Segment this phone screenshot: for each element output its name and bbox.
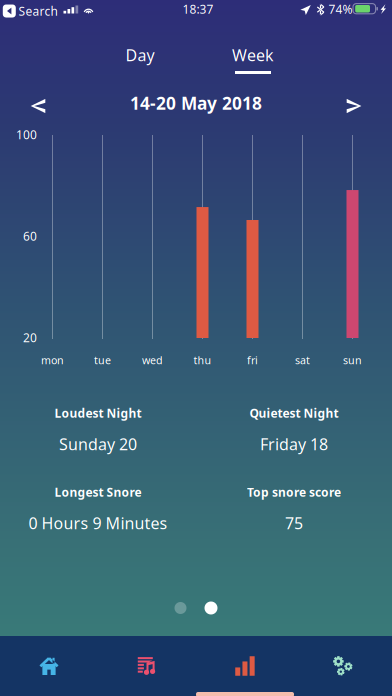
staticText: Week: [232, 44, 274, 66]
button[interactable]: Recordings: [98, 636, 196, 696]
staticText: mon: [41, 353, 64, 367]
staticText: 14-20 May 2018: [130, 91, 262, 114]
button[interactable]: Next week: [326, 89, 382, 123]
staticText: Top snore score: [247, 484, 341, 500]
staticText: 18:37: [182, 1, 213, 17]
staticText: thu: [193, 353, 211, 367]
staticText: 0 Hours 9 Minutes: [28, 512, 167, 534]
staticText: Loudest Night: [54, 405, 141, 421]
staticText: 74%: [328, 1, 352, 17]
button[interactable]: Week: [217, 38, 289, 76]
button[interactable]: Day: [104, 38, 176, 72]
button[interactable]: Settings: [294, 636, 392, 696]
staticText: Friday 18: [260, 433, 328, 455]
staticText: Quietest Night: [249, 405, 338, 421]
staticText: wed: [142, 353, 163, 367]
staticText: 20: [23, 329, 37, 345]
staticText: 60: [23, 228, 37, 244]
button[interactable]: Previous week: [10, 89, 66, 123]
staticText: 100: [16, 126, 37, 142]
staticText: sun: [343, 353, 362, 367]
button[interactable]: Home: [0, 636, 98, 696]
staticText: Day: [125, 44, 154, 66]
staticText: sat: [295, 353, 310, 367]
button[interactable]: Back to Search: [3, 2, 58, 20]
staticText: 75: [285, 512, 303, 534]
button[interactable]: Statistics: [196, 636, 294, 696]
staticText: tue: [94, 353, 111, 367]
staticText: fri: [247, 353, 258, 367]
staticText: Sunday 20: [59, 433, 137, 455]
staticText: Search: [19, 3, 58, 19]
staticText: Longest Snore: [54, 484, 141, 500]
